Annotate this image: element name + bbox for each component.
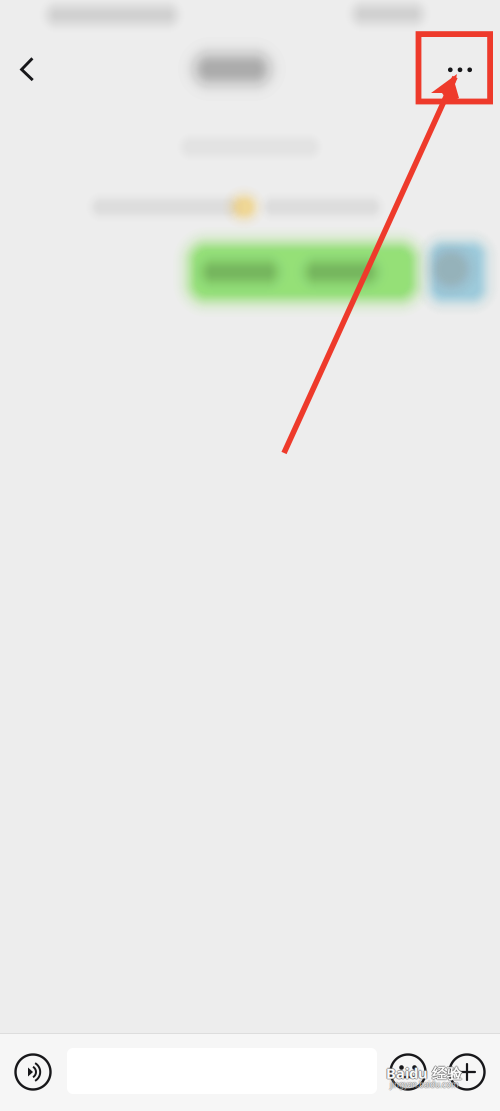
- staticText: Baidu 经验: [387, 1063, 463, 1083]
- button[interactable]: Emoji: [384, 1046, 432, 1098]
- button[interactable]: More options: [443, 1046, 491, 1098]
- staticText: jingyan.baidu.com: [391, 1079, 459, 1090]
- button[interactable]: Back: [6, 48, 50, 92]
- staticText: jingyan.baidu.com: [390, 1079, 458, 1090]
- staticText: jingyan.baidu.com: [390, 1078, 458, 1089]
- button[interactable]: More: [436, 49, 484, 91]
- staticText: Baidu 经验: [386, 1064, 462, 1084]
- button[interactable]: Voice message: [7, 1046, 59, 1098]
- staticText: Baidu 经验: [385, 1063, 461, 1083]
- staticText: jingyan.baidu.com: [389, 1079, 457, 1090]
- staticText: Baidu 经验: [386, 1062, 462, 1082]
- staticText: Baidu 经验: [386, 1063, 462, 1083]
- staticText: jingyan.baidu.com: [390, 1080, 458, 1091]
